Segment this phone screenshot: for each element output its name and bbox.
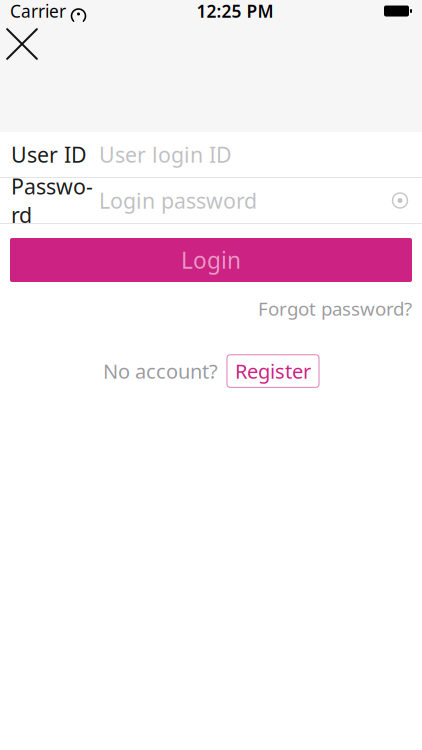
staticText: Login [181,245,241,275]
button[interactable]: Close [0,22,44,66]
staticText: Login password [99,186,257,215]
staticText: Carrier [10,0,66,22]
button[interactable]: Login [10,238,412,282]
staticText: Password [11,172,93,229]
staticText: User login ID [99,140,232,169]
staticText: Register [235,358,311,384]
button[interactable]: Password [0,178,422,223]
staticText: Forgot password? [258,296,412,321]
button[interactable]: Register [227,355,319,387]
button[interactable]: Forgot password? [258,290,412,327]
button[interactable]: User ID [0,132,422,177]
staticText: 12:25 PM [196,0,273,22]
staticText: No account? [103,358,218,384]
staticText: User ID [11,140,87,169]
